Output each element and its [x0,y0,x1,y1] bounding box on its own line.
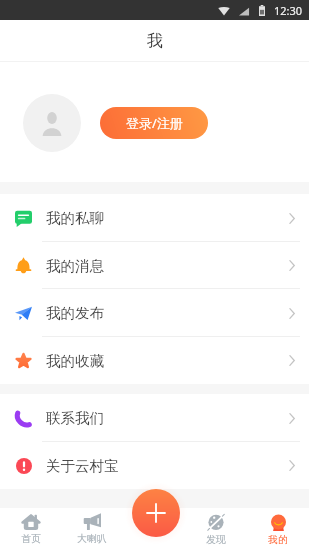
staticText: 我的收藏 [46,352,104,370]
staticText: 发现 [206,534,226,546]
button[interactable]: 我的发布 [0,289,309,337]
staticText: 登录/注册 [126,114,183,132]
button[interactable]: 联系我们 [0,394,309,442]
staticText: 大喇叭 [77,533,107,545]
button[interactable]: Add [132,489,180,537]
button[interactable]: 关于云村宝 [0,442,309,489]
button[interactable]: 首页 [0,508,61,550]
staticText: 我的消息 [46,257,104,275]
button[interactable]: 大喇叭 [61,508,123,550]
button[interactable]: 我的私聊 [0,194,309,242]
button[interactable]: 发现 [185,508,247,550]
staticText: 我的发布 [46,304,104,322]
staticText: 联系我们 [46,409,104,427]
staticText: 我的 [268,534,288,546]
button[interactable]: 登录/注册 [100,107,208,139]
button[interactable]: Avatar [23,94,81,152]
staticText: 首页 [21,533,41,545]
button[interactable]: 我的消息 [0,242,309,289]
staticText: 我的私聊 [46,209,104,227]
staticText: 12:30 [274,3,303,18]
button[interactable]: 我的收藏 [0,337,309,384]
button[interactable]: 我的 [247,508,309,550]
staticText: 我 [147,31,163,51]
staticText: 关于云村宝 [46,457,119,475]
